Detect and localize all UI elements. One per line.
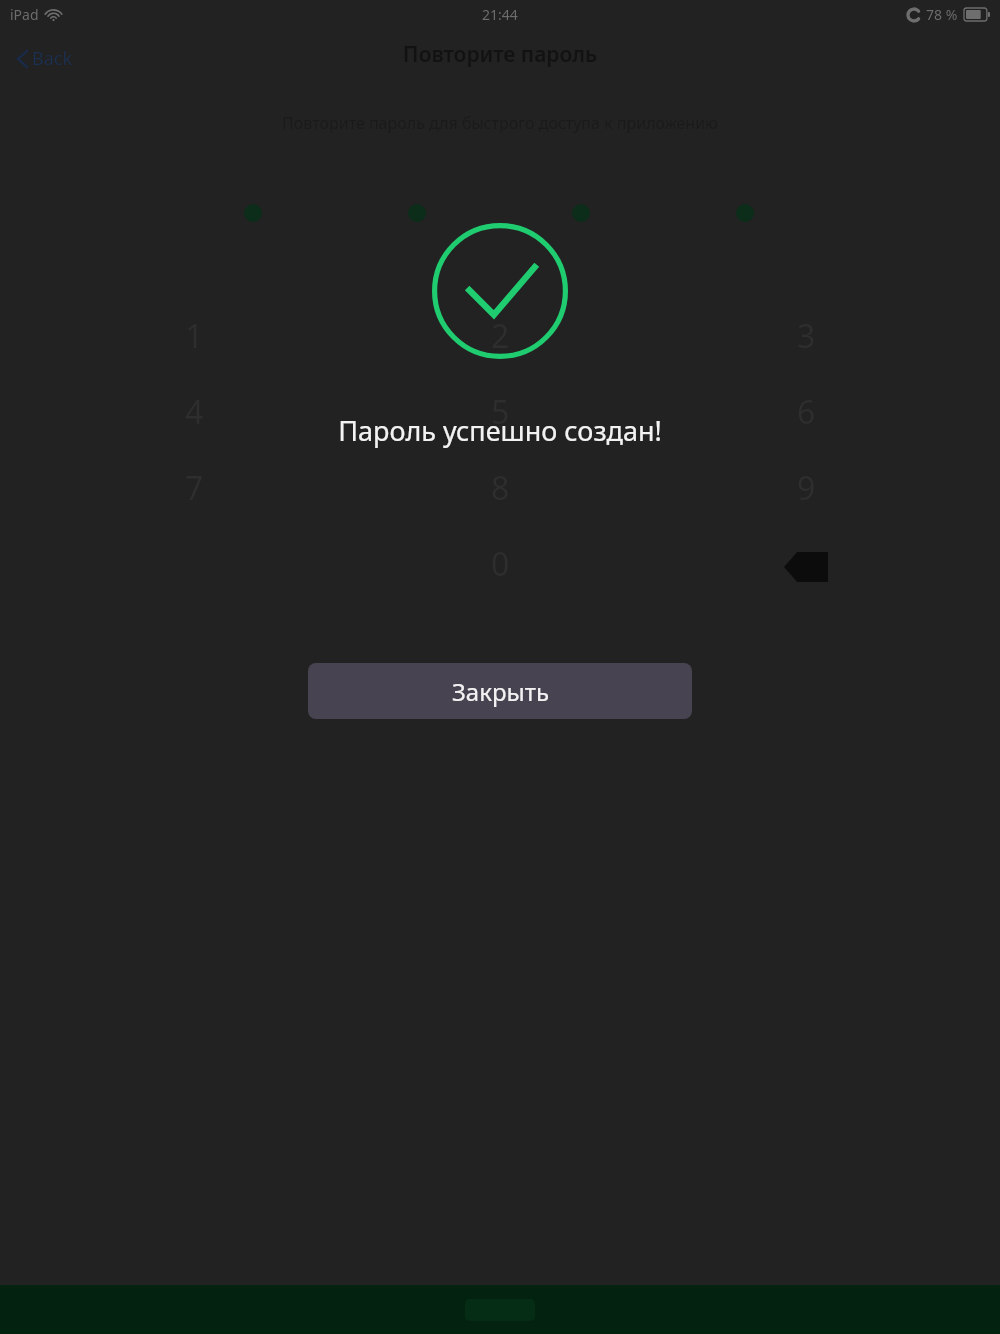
staticText: Закрыть bbox=[452, 675, 549, 708]
staticText: 1 bbox=[185, 314, 204, 358]
staticText: 3 bbox=[797, 314, 816, 358]
staticText: 8 bbox=[491, 466, 510, 510]
staticText: Пароль успешно создан! bbox=[0, 412, 1000, 449]
staticText: 6 bbox=[797, 390, 816, 434]
button[interactable]: Закрыть bbox=[308, 663, 692, 719]
staticText: 78 % bbox=[926, 5, 958, 24]
staticText: 7 bbox=[185, 466, 204, 510]
staticText: Повторите пароль bbox=[0, 40, 1000, 69]
button[interactable]: Back bbox=[14, 42, 77, 75]
button[interactable]: 2 bbox=[460, 310, 540, 362]
staticText: 0 bbox=[491, 542, 510, 586]
button[interactable]: Delete bbox=[770, 543, 842, 591]
staticText: 21:44 bbox=[482, 5, 518, 24]
staticText: 2 bbox=[491, 314, 510, 358]
button[interactable]: 5 bbox=[460, 386, 540, 438]
staticText: 5 bbox=[491, 390, 510, 434]
staticText: 9 bbox=[797, 466, 816, 510]
staticText: 4 bbox=[185, 390, 204, 434]
staticText: iPad bbox=[10, 5, 39, 24]
staticText: Back bbox=[32, 46, 73, 71]
